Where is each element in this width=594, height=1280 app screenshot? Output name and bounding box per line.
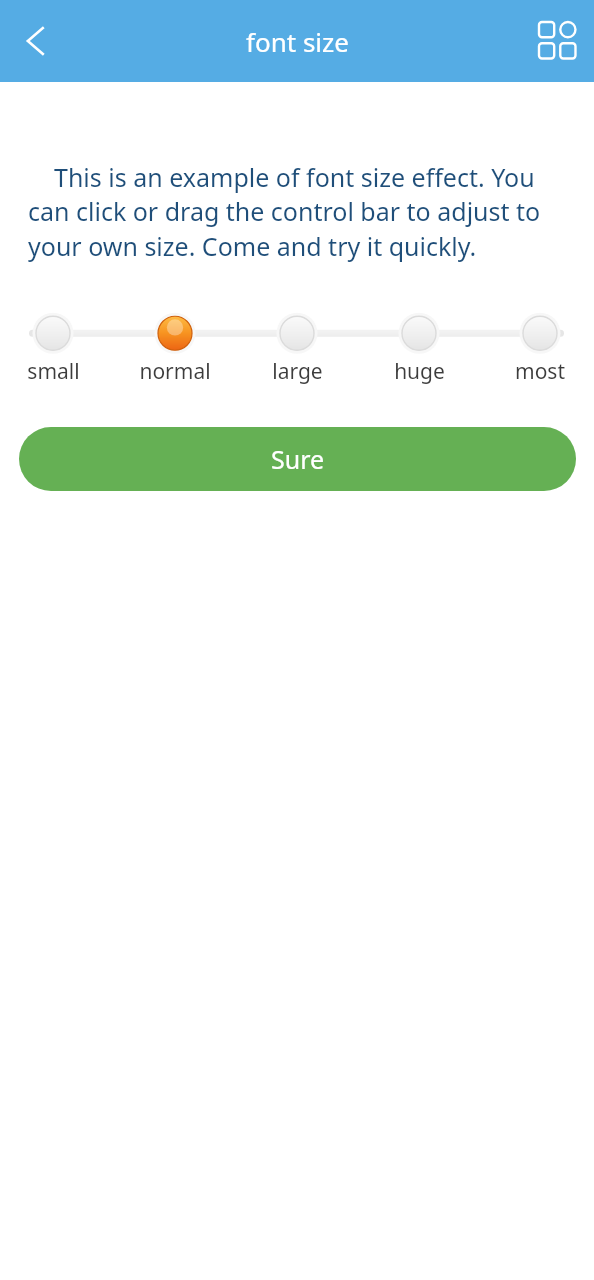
button[interactable]: most: [518, 313, 562, 357]
staticText: most: [515, 357, 565, 386]
staticText: font size: [246, 24, 349, 59]
button[interactable]: Back: [8, 13, 64, 69]
button[interactable]: large: [275, 313, 319, 357]
staticText: This is an example of font size effect. …: [28, 160, 566, 264]
button[interactable]: normal: [153, 313, 197, 357]
button[interactable]: small: [31, 313, 75, 357]
staticText: small: [27, 357, 80, 386]
staticText: Sure: [271, 442, 325, 476]
staticText: large: [272, 357, 323, 386]
button[interactable]: huge: [397, 313, 441, 357]
staticText: normal: [139, 357, 211, 386]
staticText: huge: [394, 357, 445, 386]
button[interactable]: Sure: [19, 427, 576, 491]
button[interactable]: Menu: [530, 13, 586, 69]
